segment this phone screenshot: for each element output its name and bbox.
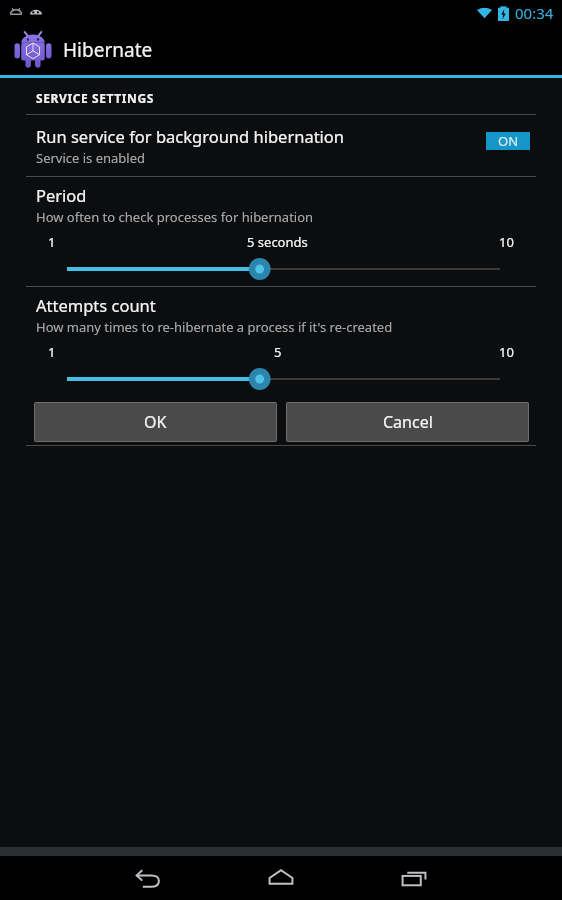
staticText: 10 — [499, 233, 514, 251]
button[interactable]: Home — [253, 856, 309, 900]
staticText: Attempts count — [36, 294, 156, 316]
staticText: Cancel — [383, 411, 433, 433]
staticText: Run service for background hibernation — [36, 125, 345, 147]
button[interactable]: Run service for background hibernation — [0, 115, 562, 176]
staticText: 10 — [499, 343, 514, 361]
button[interactable]: Recent apps — [386, 856, 442, 900]
button[interactable]: Slider — [0, 256, 562, 282]
button[interactable]: Back — [120, 856, 176, 900]
staticText: How often to check processes for hiberna… — [36, 208, 314, 226]
staticText: Period — [36, 184, 87, 206]
staticText: Hibernate — [63, 37, 153, 63]
staticText: 1 — [48, 343, 56, 361]
button[interactable]: Run service toggle, on — [442, 132, 530, 160]
button[interactable]: OK — [35, 403, 276, 441]
staticText: OK — [144, 411, 167, 433]
button[interactable]: Slider — [0, 366, 562, 392]
staticText: 5 seconds — [247, 233, 308, 251]
staticText: How many times to re-hibernate a process… — [36, 318, 393, 336]
staticText: 00:34 — [515, 3, 554, 23]
button[interactable]: Cancel — [287, 403, 528, 441]
staticText: Service is enabled — [36, 149, 146, 167]
staticText: 5 — [274, 343, 282, 361]
staticText: 1 — [48, 233, 56, 251]
staticText: ON — [498, 132, 519, 150]
staticText: SERVICE SETTINGS — [36, 90, 154, 106]
